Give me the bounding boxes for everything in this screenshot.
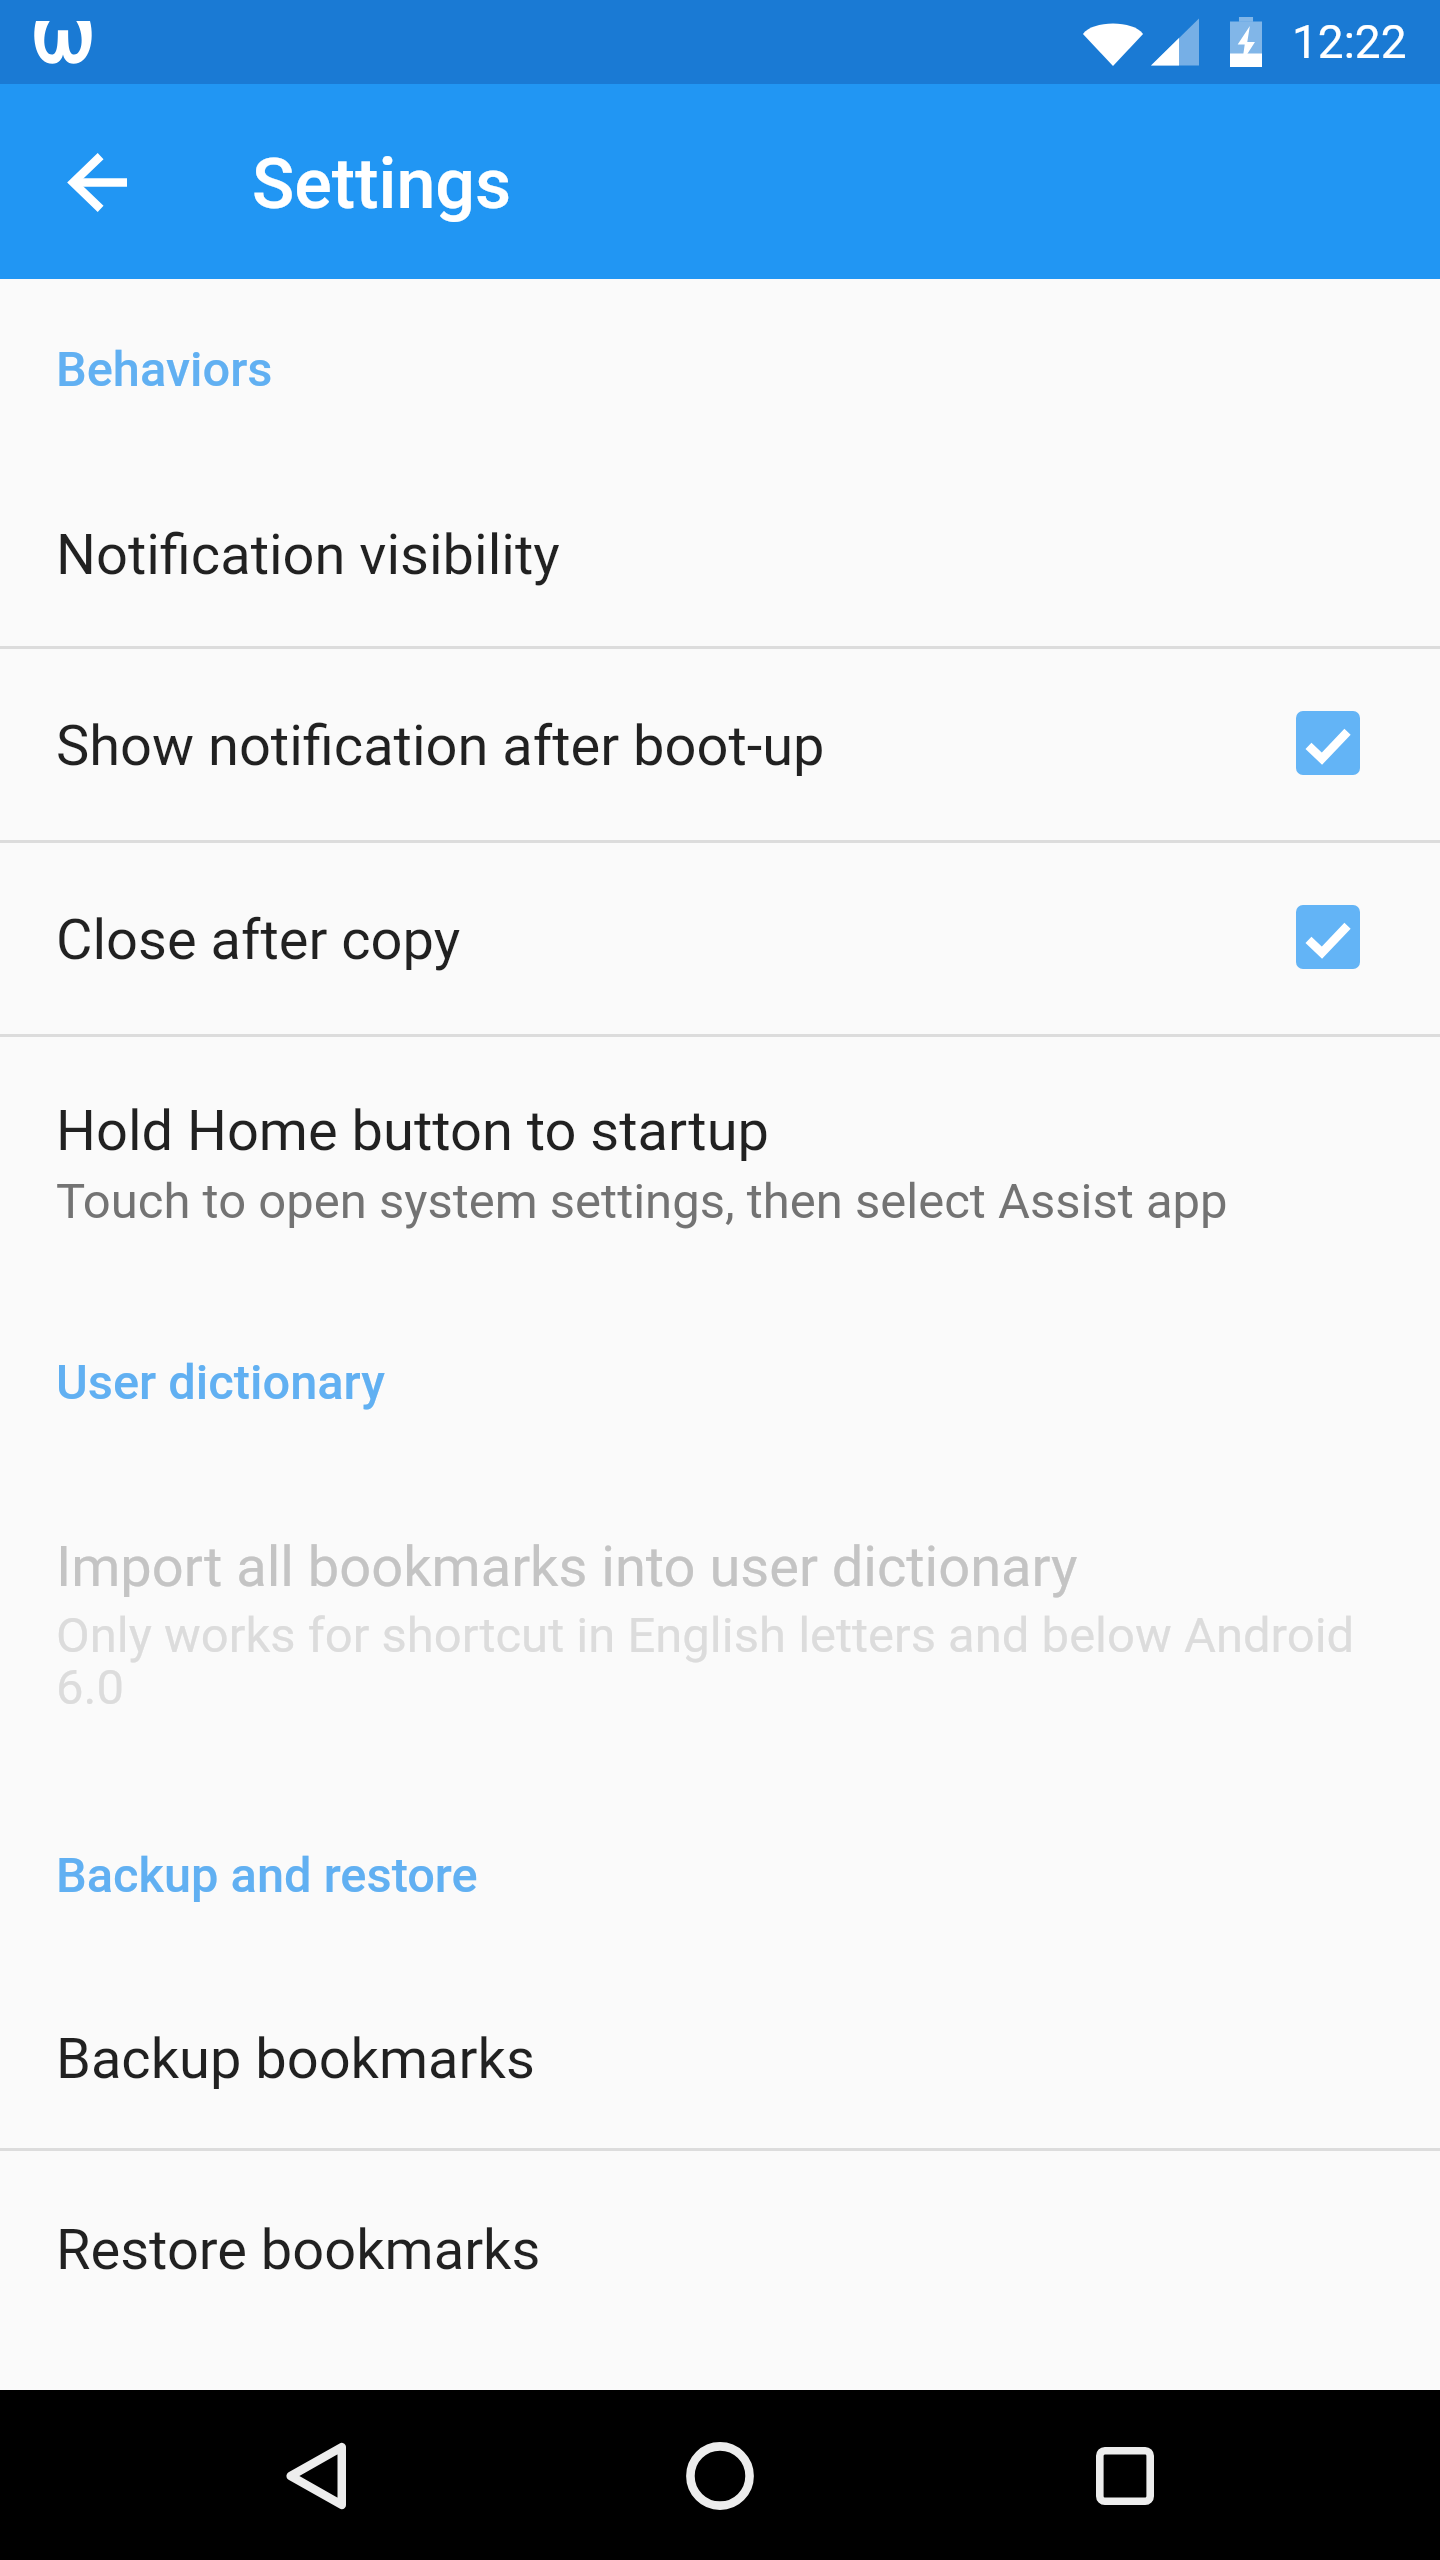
staticText: Only works for shortcut in English lette… <box>56 1611 1382 1715</box>
button[interactable]: Show notification after boot-up <box>0 646 1440 840</box>
other: App icon <box>36 21 90 63</box>
staticText: Backup bookmarks <box>56 2026 535 2092</box>
button[interactable]: Backup bookmarks <box>0 1954 1440 2148</box>
staticText: Backup and restore <box>56 1847 478 1904</box>
button[interactable]: Recent apps <box>1070 2421 1180 2531</box>
button[interactable]: Import all bookmarks into user dictionar… <box>0 1469 1440 1799</box>
button[interactable]: Notification visibility <box>0 452 1440 646</box>
button[interactable]: Home <box>665 2421 775 2531</box>
staticText: Behaviors <box>56 341 273 398</box>
button[interactable]: Navigate up <box>54 138 142 226</box>
staticText: Touch to open system settings, then sele… <box>56 1177 1228 1229</box>
button[interactable]: Toggle Close after copy <box>1296 905 1360 969</box>
button[interactable]: Restore bookmarks <box>0 2148 1440 2342</box>
staticText: Notification visibility <box>56 522 560 588</box>
staticText: Close after copy <box>56 907 461 973</box>
staticText: User dictionary <box>56 1354 385 1411</box>
staticText: Show notification after boot-up <box>56 713 825 779</box>
button[interactable]: Back <box>261 2421 371 2531</box>
staticText: Import all bookmarks into user dictionar… <box>56 1534 1078 1600</box>
staticText: 12:22 <box>1292 15 1407 69</box>
button[interactable]: Toggle Show notification after boot-up <box>1296 711 1360 775</box>
staticText: Settings <box>252 143 512 225</box>
staticText: Hold Home button to startup <box>56 1098 769 1164</box>
staticText: Restore bookmarks <box>56 2217 541 2283</box>
button[interactable]: Hold Home button to startup <box>0 1034 1440 1296</box>
button[interactable]: Close after copy <box>0 840 1440 1034</box>
